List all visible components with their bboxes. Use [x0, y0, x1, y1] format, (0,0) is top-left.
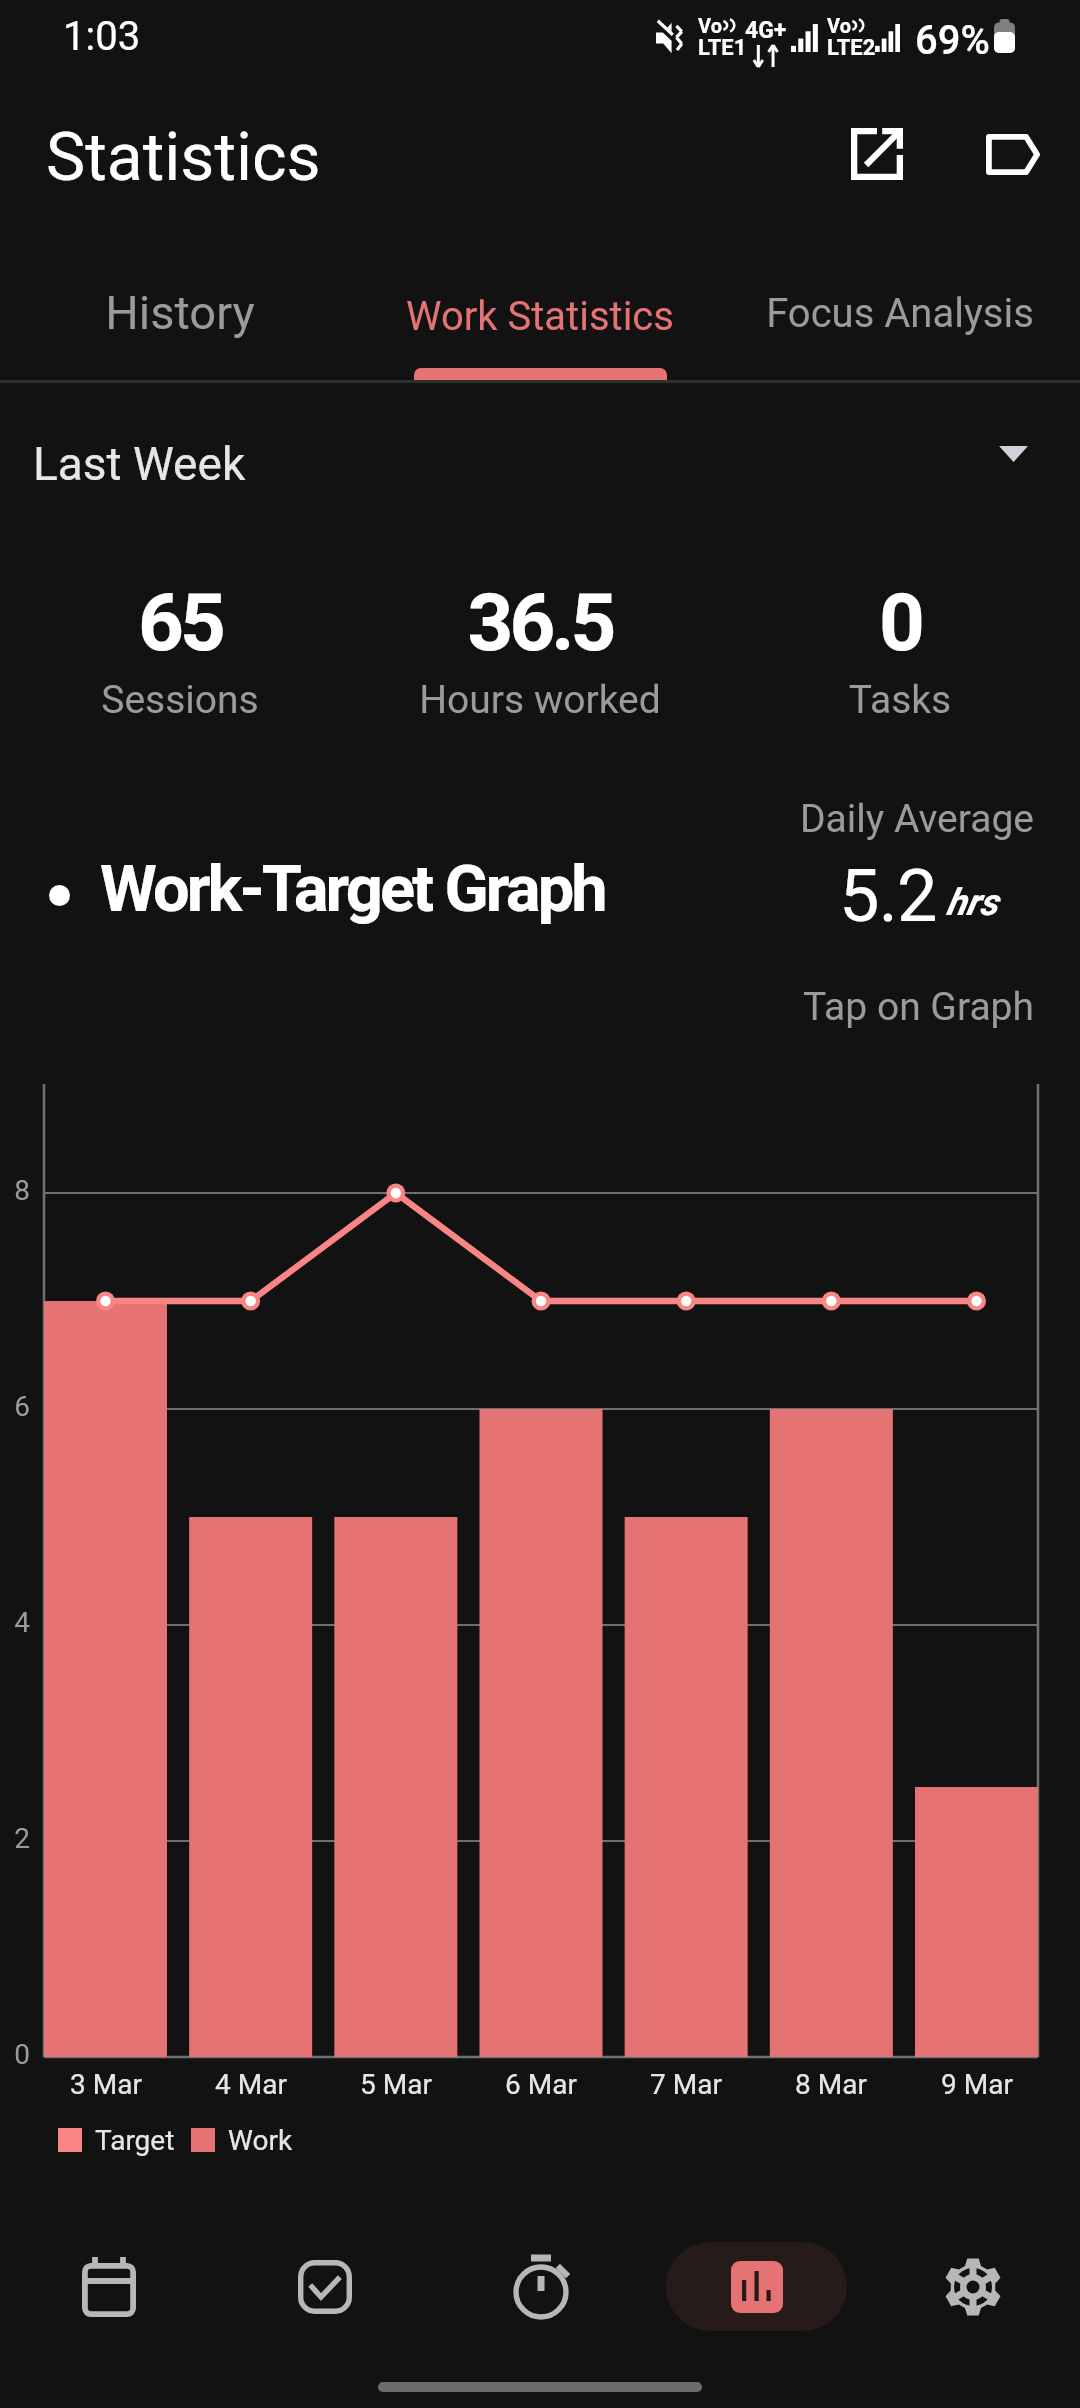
staticText: 4 — [0, 1606, 30, 1639]
staticText: Tap on Graph — [803, 984, 1034, 1030]
staticText: 5.2 — [839, 854, 937, 938]
staticText: Statistics — [46, 119, 321, 196]
staticText: 9 Mar — [887, 2068, 1067, 2101]
staticText: Hours worked — [360, 677, 720, 723]
staticText: Target — [95, 2124, 175, 2157]
staticText: 7 Mar — [596, 2068, 776, 2101]
staticText: Vo — [698, 14, 722, 37]
staticText: 65 — [0, 576, 360, 670]
button[interactable]: Focus Analysis — [720, 232, 1080, 382]
staticText: 6 — [0, 1390, 30, 1423]
staticText: Tasks — [720, 677, 1080, 723]
staticText: 0 — [720, 576, 1080, 670]
staticText: 5 Mar — [306, 2068, 486, 2101]
staticText: 8 Mar — [741, 2068, 921, 2101]
button[interactable]: Calendar — [0, 2206, 216, 2366]
staticText: 69% — [915, 17, 990, 64]
button[interactable]: Work-Target graph — [44, 1084, 1038, 2057]
button[interactable]: Tasks — [216, 2206, 432, 2366]
button[interactable]: Work Statistics — [360, 232, 720, 382]
button[interactable]: Last Week — [0, 383, 1080, 538]
button[interactable]: Settings — [864, 2206, 1080, 2366]
staticText: LTE1 — [698, 35, 747, 61]
staticText: Daily Average — [800, 796, 1034, 842]
button[interactable]: Statistics — [648, 2206, 864, 2366]
staticText: Sessions — [0, 677, 360, 723]
staticText: History — [105, 285, 255, 340]
button[interactable]: History — [0, 232, 360, 382]
staticText: LTE2 — [827, 35, 876, 61]
staticText: 6 Mar — [451, 2068, 631, 2101]
staticText: 4G+ — [745, 17, 787, 44]
staticText: 4 Mar — [161, 2068, 341, 2101]
staticText: 36.5 — [360, 576, 720, 670]
staticText: hrs — [946, 881, 998, 924]
staticText: 8 — [0, 1174, 30, 1207]
staticText: 3 Mar — [16, 2068, 196, 2101]
button[interactable]: Timer — [432, 2206, 648, 2366]
staticText: 0 — [0, 2038, 30, 2071]
staticText: Work Statistics — [406, 293, 674, 340]
staticText: 1:03 — [63, 13, 141, 60]
staticText: Work — [228, 2124, 293, 2157]
staticText: 2 — [0, 1822, 30, 1855]
staticText: Work-Target Graph — [100, 851, 605, 927]
button[interactable]: Open in new window — [815, 92, 939, 216]
staticText: Vo — [827, 14, 851, 37]
button[interactable]: Labels — [951, 92, 1075, 216]
staticText: Focus Analysis — [766, 290, 1034, 337]
staticText: Last Week — [33, 437, 246, 491]
